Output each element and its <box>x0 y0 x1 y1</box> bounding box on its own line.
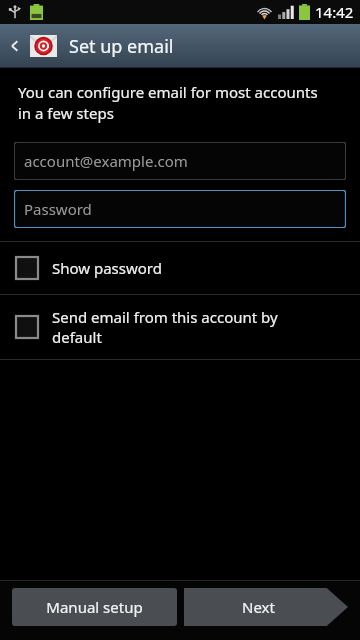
button[interactable]: Manual setup <box>12 588 177 626</box>
button[interactable]: Send email from this account by default <box>0 295 360 359</box>
staticText: Set up email <box>69 34 174 59</box>
button[interactable]: account@example.com <box>14 142 346 180</box>
button[interactable]: Next <box>184 588 348 626</box>
staticText: Password <box>24 199 92 219</box>
staticText: Next <box>242 597 275 617</box>
staticText: 14:42 <box>315 2 354 22</box>
button[interactable]: Show password <box>0 242 360 294</box>
staticText: Show password <box>52 258 162 278</box>
staticText: You can configure email for most account… <box>18 82 318 124</box>
staticText: Send email from this account by default <box>52 307 278 347</box>
button[interactable]: Back <box>0 24 30 68</box>
staticText: account@example.com <box>24 151 188 171</box>
staticText: Manual setup <box>46 597 143 617</box>
button[interactable]: Password <box>14 190 346 228</box>
